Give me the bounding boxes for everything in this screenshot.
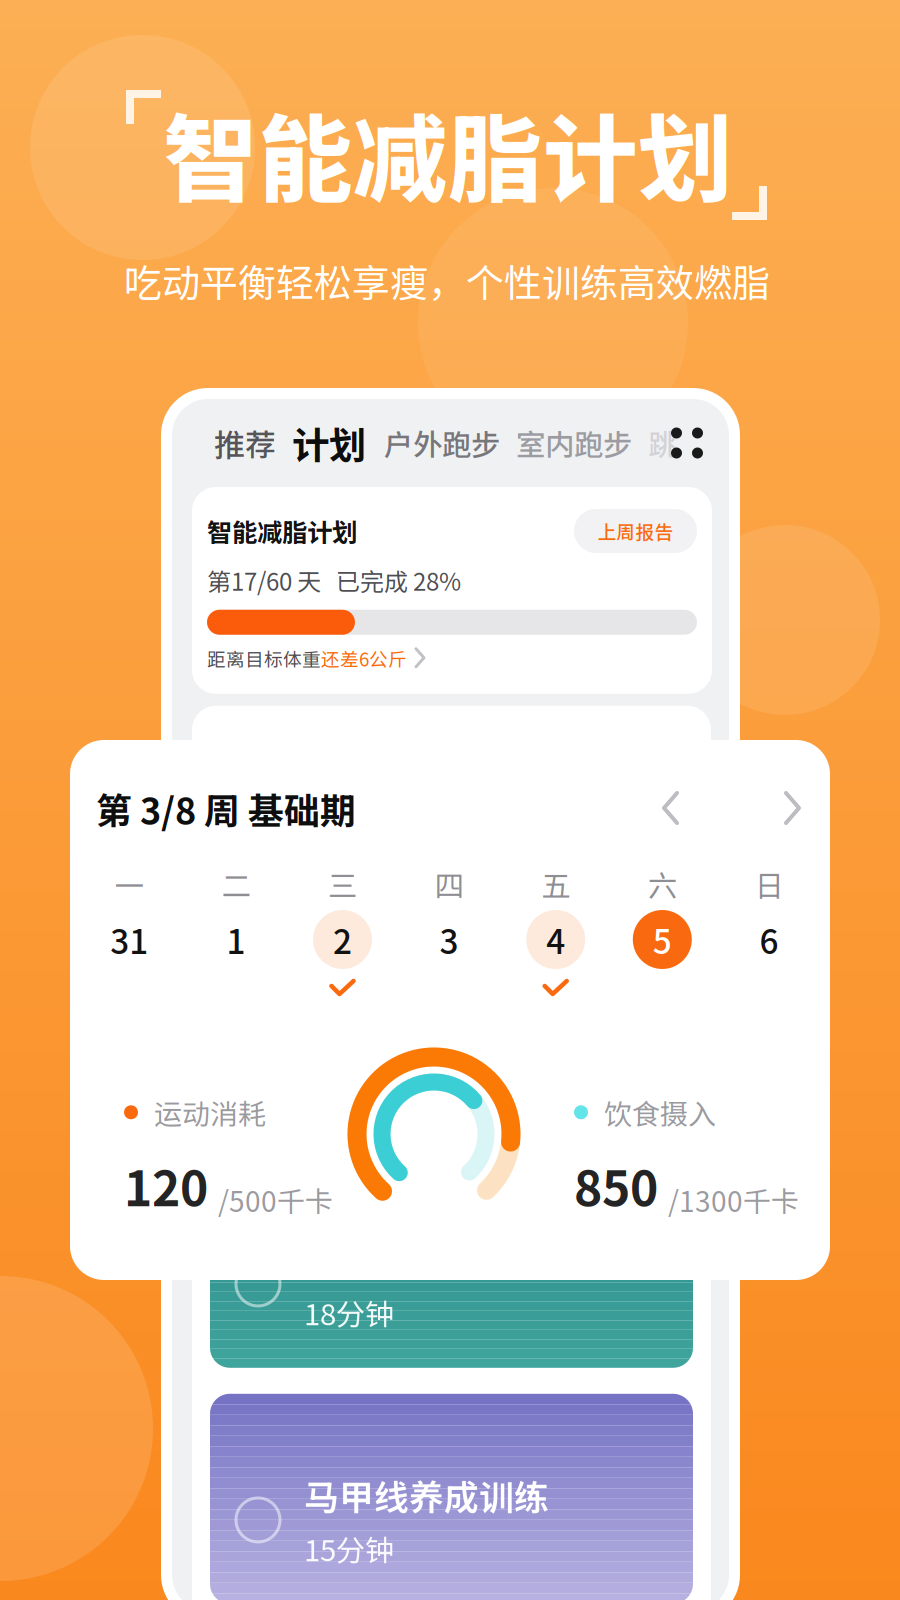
staticText: 距离目标体重 (207, 645, 321, 672)
staticText: /500千卡 (218, 1179, 333, 1220)
staticText: 燃脂有氧训练 (304, 1234, 514, 1284)
button[interactable]: 六 (609, 871, 716, 997)
button[interactable]: 室内跑步 (516, 422, 632, 464)
staticText: 15分钟 (304, 1527, 394, 1570)
button[interactable]: 二 (183, 871, 289, 997)
staticText: 120 (124, 1150, 208, 1220)
staticText: 马甲线养成训练 (304, 1470, 549, 1520)
staticText: 4 (546, 915, 565, 964)
staticText: 推荐 (214, 421, 276, 465)
button[interactable]: 上周报告 (574, 509, 697, 553)
button[interactable]: All categories (663, 419, 711, 466)
button[interactable]: Previous week (648, 778, 694, 839)
staticText: 计划 (292, 416, 366, 470)
staticText: 智能减脂计划 (163, 84, 733, 221)
button[interactable]: 马甲线养成训练 (210, 1394, 693, 1600)
staticText: 18分钟 (304, 1291, 394, 1334)
staticText: 二 (221, 863, 250, 905)
staticText: 智能减脂计划 (207, 513, 357, 549)
button[interactable]: Next week (770, 778, 816, 839)
staticText: 第 3/8 周 基础期 (96, 782, 356, 834)
button[interactable]: 计划 (292, 416, 366, 470)
staticText: 还差6公斤 (321, 645, 407, 672)
staticText: 吃动平衡轻松享瘦，个性训练高效燃脂 (124, 253, 770, 308)
staticText: 日 (754, 863, 783, 905)
button[interactable]: 户外跑步 (384, 422, 500, 464)
staticText: 850 (574, 1150, 658, 1220)
staticText: 1 (226, 915, 245, 964)
staticText: 3 (440, 915, 459, 964)
staticText: 六 (648, 863, 677, 905)
button[interactable]: 推荐 (214, 421, 276, 465)
button[interactable]: 日 (716, 871, 822, 997)
staticText: 5 (653, 915, 672, 964)
staticText: 第17/60 天 已完成 28% (207, 563, 461, 598)
staticText: 跳 (648, 422, 677, 464)
button[interactable]: 三 (289, 871, 396, 997)
button[interactable]: 燃脂有氧训练 (210, 1178, 693, 1368)
staticText: 饮食摄入 (604, 1092, 716, 1132)
staticText: 室内跑步 (516, 422, 632, 464)
staticText: 户外跑步 (384, 422, 500, 464)
staticText: 2 (333, 915, 352, 964)
staticText: 四 (435, 863, 464, 905)
staticText: /1300千卡 (668, 1179, 799, 1220)
staticText: 上周报告 (597, 517, 673, 544)
button[interactable]: 四 (396, 871, 502, 997)
staticText: 三 (328, 863, 357, 905)
staticText: 6 (759, 915, 778, 964)
staticText: 运动消耗 (154, 1092, 266, 1132)
button[interactable]: 五 (502, 871, 609, 997)
staticText: 五 (541, 863, 570, 905)
staticText: 一 (115, 863, 144, 905)
button[interactable]: 距离目标体重 (207, 645, 697, 672)
button[interactable]: 一 (76, 871, 183, 997)
staticText: 31 (110, 915, 148, 964)
